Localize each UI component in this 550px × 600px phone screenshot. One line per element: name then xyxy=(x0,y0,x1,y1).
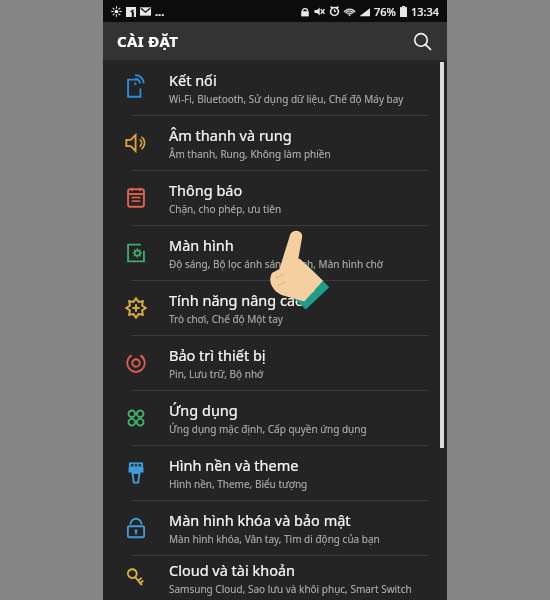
staticText: Độ sáng, Bộ lọc ánh sáng xanh, Màn hình … xyxy=(169,257,383,271)
staticText: Pin, Lưu trữ, Bộ nhớ xyxy=(169,367,264,381)
button[interactable]: Kết nối xyxy=(103,60,447,115)
button[interactable]: Ứng dụng xyxy=(103,391,447,445)
staticText: Âm thanh và rung xyxy=(169,125,292,145)
staticText: Cloud và tài khoản xyxy=(169,560,296,580)
button[interactable]: Màn hình xyxy=(103,226,447,280)
button[interactable]: Search xyxy=(405,24,439,58)
staticText: Ứng dụng xyxy=(169,400,238,420)
staticText: ... xyxy=(155,4,165,19)
staticText: Màn hình khóa, Vân tay, Tìm di động của … xyxy=(169,532,380,546)
button[interactable]: Thông báo xyxy=(103,171,447,225)
button[interactable]: Bảo trì thiết bị xyxy=(103,336,447,390)
staticText: Wi-Fi, Bluetooth, Sử dụng dữ liệu, Chế đ… xyxy=(169,92,404,106)
staticText: Hình nền, Theme, Biểu tượng xyxy=(169,477,308,491)
staticText: Chặn, cho phép, ưu tiên xyxy=(169,202,282,216)
staticText: Hình nền và theme xyxy=(169,455,299,475)
staticText: Ứng dụng mặc định, Cấp quyền ứng dụng xyxy=(169,422,367,436)
staticText: 13:34 xyxy=(411,4,440,19)
staticText: 76% xyxy=(374,4,396,19)
staticText: Bảo trì thiết bị xyxy=(169,345,266,365)
button[interactable]: Cloud và tài khoản xyxy=(103,556,447,600)
staticText: Màn hình khóa và bảo mật xyxy=(169,510,351,530)
staticText: CÀI ĐẶT xyxy=(117,31,179,51)
staticText: Trò chơi, Chế độ Một tay xyxy=(169,312,283,326)
button[interactable]: Tính năng nâng cao xyxy=(103,281,447,335)
staticText: Samsung Cloud, Sao lưu và khôi phục, Sma… xyxy=(169,582,412,596)
staticText: Kết nối xyxy=(169,70,217,90)
staticText: Màn hình xyxy=(169,235,234,255)
staticText: Thông báo xyxy=(169,180,243,200)
staticText: Tính năng nâng cao xyxy=(169,290,304,310)
staticText: Âm thanh, Rung, Không làm phiền xyxy=(169,147,331,161)
button[interactable]: Âm thanh và rung xyxy=(103,116,447,170)
button[interactable]: Hình nền và theme xyxy=(103,446,447,500)
button[interactable]: Màn hình khóa và bảo mật xyxy=(103,501,447,555)
